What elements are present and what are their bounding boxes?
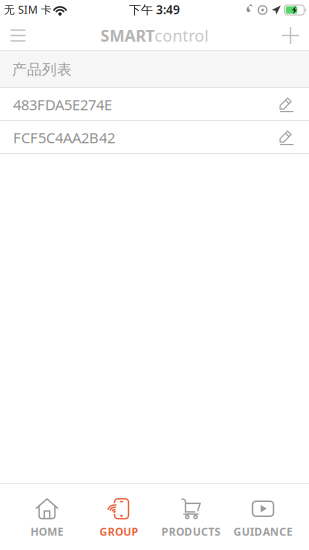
button[interactable]: HOME [11, 483, 83, 550]
button[interactable]: GROUP [83, 483, 155, 550]
staticText: PRODUCTS [161, 524, 221, 539]
button[interactable]: 483FDA5E274E [0, 88, 309, 121]
staticText: SMART [100, 25, 154, 46]
staticText: 产品列表 [12, 60, 72, 78]
staticText: GROUP [99, 524, 139, 539]
staticText: 无 SIM 卡 [4, 2, 52, 17]
button[interactable]: Menu [0, 20, 36, 51]
button[interactable]: FCF5C4AA2B42 [0, 121, 309, 154]
staticText: FCF5C4AA2B42 [13, 128, 115, 147]
staticText: 下午 3:49 [129, 1, 180, 17]
staticText: 483FDA5E274E [13, 95, 112, 114]
staticText: GUIDANCE [233, 524, 293, 539]
button[interactable]: PRODUCTS [155, 483, 227, 550]
button[interactable]: GUIDANCE [227, 483, 299, 550]
button[interactable]: Add [272, 20, 309, 51]
staticText: HOME [31, 524, 63, 539]
staticText: control [154, 25, 208, 46]
